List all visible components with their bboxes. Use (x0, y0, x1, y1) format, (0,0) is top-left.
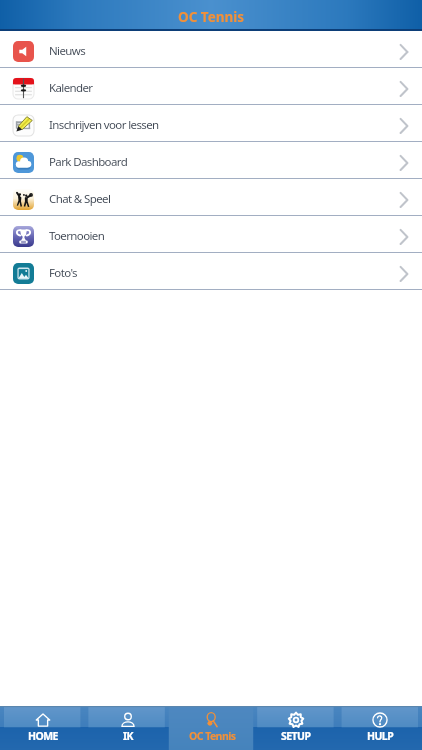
staticText: OC Tennis (178, 8, 245, 26)
staticText: Kalender (49, 80, 93, 96)
staticText: Foto's (49, 265, 77, 281)
staticText: HULP (367, 729, 394, 743)
staticText: Park Dashboard (49, 154, 128, 170)
staticText: Chat & Speel (49, 191, 111, 207)
staticText: HOME (28, 729, 58, 743)
button[interactable]: Kalender (0, 68, 422, 105)
staticText: Nieuws (49, 43, 86, 59)
button[interactable]: Nieuws (0, 31, 422, 68)
button[interactable]: Foto's (0, 253, 422, 290)
staticText: Inschrijven voor lessen (49, 117, 159, 133)
button[interactable]: Inschrijven voor lessen (0, 105, 422, 142)
button[interactable]: Chat & Speel (0, 179, 422, 216)
staticText: Toernooien (49, 228, 105, 244)
button[interactable]: HULP (338, 706, 422, 750)
button[interactable]: IK (85, 706, 170, 750)
staticText: OC Tennis (189, 729, 236, 743)
button[interactable]: Toernooien (0, 216, 422, 253)
button[interactable]: SETUP (254, 706, 338, 750)
staticText: IK (123, 729, 133, 743)
button[interactable]: OC Tennis (170, 706, 254, 750)
button[interactable]: HOME (0, 706, 85, 750)
staticText: SETUP (281, 729, 311, 743)
button[interactable]: Park Dashboard (0, 142, 422, 179)
